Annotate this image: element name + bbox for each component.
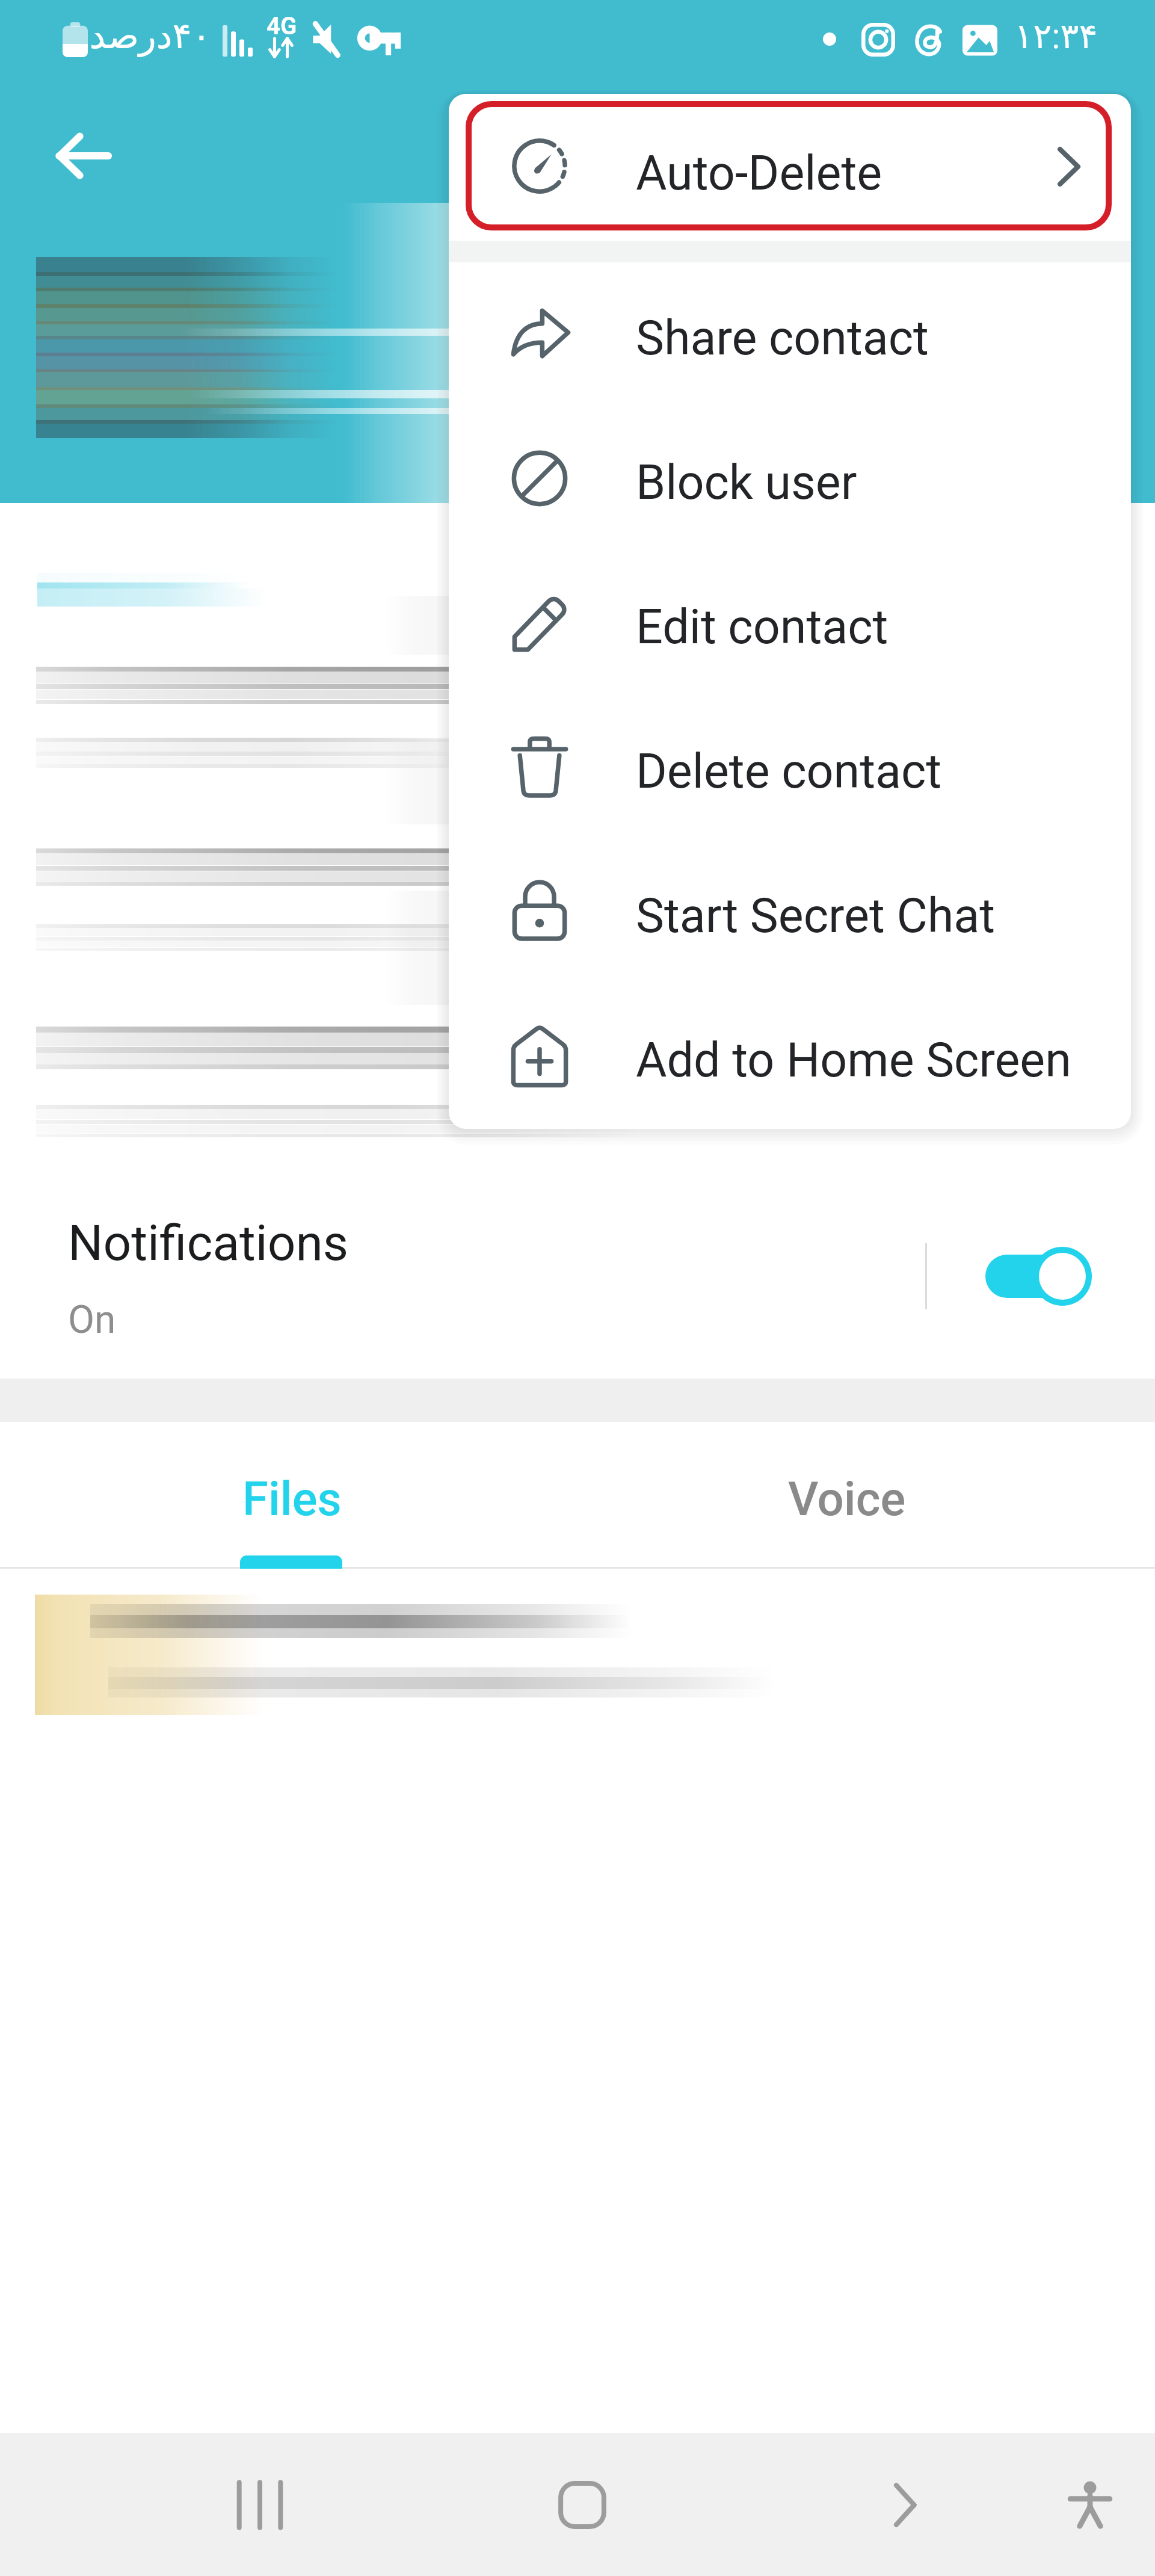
staticText: ۴۰درصد (89, 14, 211, 57)
staticText: Notifications (68, 1214, 349, 1272)
button[interactable]: Start Secret Chat (449, 840, 1131, 984)
button[interactable]: Delete contact (449, 696, 1131, 840)
button[interactable]: Block user (449, 407, 1131, 551)
staticText: Voice (788, 1472, 906, 1527)
staticText: Add to Home Screen (636, 1033, 1071, 1089)
staticText: Start Secret Chat (636, 888, 996, 944)
button[interactable]: Edit contact (449, 551, 1131, 696)
staticText: Delete contact (636, 744, 942, 800)
staticText: ۱۲:۳۴ (1014, 16, 1098, 57)
staticText: On (68, 1297, 116, 1342)
staticText: Files (242, 1472, 342, 1527)
button[interactable]: Back (857, 2457, 953, 2553)
button[interactable]: Recent apps (212, 2457, 308, 2553)
staticText: Auto-Delete (636, 146, 882, 202)
button[interactable]: Back (40, 113, 125, 199)
staticText: Edit contact (636, 599, 889, 655)
button[interactable]: Share contact (449, 262, 1131, 407)
button[interactable]: Notifications toggle (969, 1225, 1107, 1327)
button[interactable]: Home (534, 2457, 630, 2553)
button[interactable]: Add to Home Screen (449, 984, 1131, 1129)
button[interactable]: Files (147, 1425, 436, 1572)
staticText: Block user (636, 455, 857, 511)
staticText: 4G (266, 12, 297, 40)
staticText: Share contact (636, 310, 929, 366)
button[interactable]: Accessibility (1042, 2457, 1138, 2553)
button[interactable]: Auto-Delete (449, 94, 1131, 241)
button[interactable]: Voice (703, 1425, 991, 1572)
button[interactable]: Notifications (0, 1167, 1155, 1379)
